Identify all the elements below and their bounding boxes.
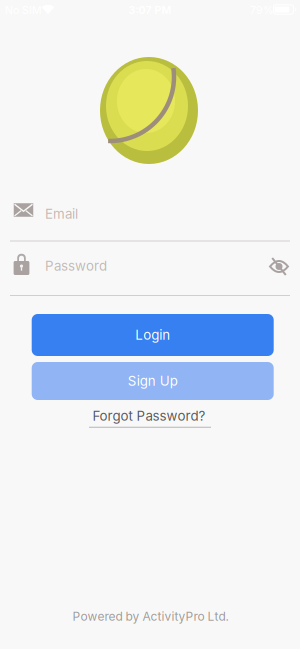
staticText: Sign Up [128, 373, 178, 389]
staticText: Email [45, 206, 78, 222]
staticText: Password [45, 258, 107, 274]
staticText: Powered by ActivityPro Ltd. [72, 609, 228, 624]
staticText: Forgot Password? [92, 408, 205, 424]
button[interactable]: Login [32, 314, 274, 356]
button[interactable]: Forgot Password? [86, 406, 213, 428]
button[interactable]: Show password [269, 258, 289, 275]
button[interactable]: Sign Up [32, 362, 274, 400]
button[interactable]: Password [10, 246, 290, 296]
staticText: Login [135, 327, 170, 343]
button[interactable]: Email [10, 195, 290, 241]
